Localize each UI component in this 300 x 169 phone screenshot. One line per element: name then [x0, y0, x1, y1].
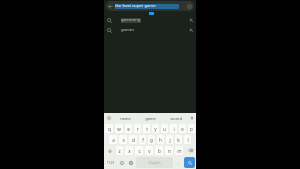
button[interactable]: d	[129, 135, 137, 144]
button[interactable]: t	[143, 124, 150, 133]
button[interactable]: x	[125, 146, 133, 155]
staticText: l	[187, 137, 189, 143]
staticText: z	[118, 148, 121, 154]
button[interactable]: q	[105, 124, 113, 133]
button[interactable]: ?123	[105, 157, 116, 168]
staticText: v	[148, 148, 151, 154]
button[interactable]: i	[170, 124, 177, 133]
button[interactable]: Back	[106, 1, 194, 11]
button[interactable]: u	[161, 124, 168, 133]
button[interactable]: v	[145, 146, 153, 155]
button[interactable]: Back	[106, 1, 115, 11]
staticText: English	[149, 160, 161, 165]
button[interactable]: game	[138, 113, 163, 123]
button[interactable]: b	[155, 146, 163, 155]
button[interactable]: c	[135, 146, 143, 155]
staticText: u	[163, 126, 166, 132]
button[interactable]: a	[109, 135, 117, 144]
button[interactable]: w	[115, 124, 123, 133]
button[interactable]: n	[165, 146, 173, 155]
button[interactable]: m	[175, 146, 183, 155]
staticText: c	[138, 148, 141, 154]
button[interactable]: Insert suggestion	[186, 18, 196, 23]
staticText: w	[117, 126, 121, 132]
staticText: d	[132, 137, 135, 143]
button[interactable]: Expand toolbar	[105, 113, 112, 123]
button[interactable]: f	[139, 135, 146, 144]
staticText: .	[178, 160, 180, 166]
button[interactable]: s	[119, 135, 127, 144]
button[interactable]: .	[174, 156, 183, 169]
staticText: n	[168, 148, 171, 154]
button[interactable]: name	[112, 113, 138, 123]
staticText: y	[154, 126, 157, 132]
staticText: i	[173, 126, 175, 132]
staticText: f	[142, 137, 144, 143]
staticText: a	[112, 137, 115, 143]
button[interactable]: g	[148, 135, 155, 144]
staticText: o	[181, 126, 184, 132]
staticText: g	[150, 137, 153, 143]
staticText: the best super game	[115, 3, 156, 9]
staticText: name	[120, 116, 131, 121]
staticText: s	[122, 137, 125, 143]
button[interactable]: Search	[184, 157, 195, 168]
button[interactable]: o	[179, 124, 186, 133]
button[interactable]: j	[166, 135, 173, 144]
button[interactable]: r	[134, 124, 141, 133]
button[interactable]: gamezing	[104, 15, 196, 25]
button[interactable]: Shift	[105, 146, 114, 155]
staticText: p	[190, 126, 193, 132]
button[interactable]: y	[152, 124, 159, 133]
button[interactable]: sound	[163, 113, 188, 123]
staticText: q	[108, 126, 111, 132]
staticText: m	[177, 148, 182, 154]
staticText: e	[127, 126, 130, 132]
button[interactable]: e	[125, 124, 132, 133]
button[interactable]: k	[175, 135, 182, 144]
button[interactable]: Insert suggestion	[186, 28, 196, 33]
staticText: b	[158, 148, 161, 154]
button[interactable]: p	[188, 124, 195, 133]
button[interactable]: Emoji	[117, 156, 126, 169]
button[interactable]: l	[184, 135, 191, 144]
staticText: k	[177, 137, 180, 143]
staticText: sound	[170, 116, 182, 121]
staticText: gamezing	[121, 17, 141, 23]
staticText: game	[145, 116, 156, 121]
staticText: r	[137, 126, 139, 132]
staticText: ?123	[107, 160, 115, 165]
staticText: t	[146, 126, 148, 132]
button[interactable]: Backspace	[185, 146, 195, 155]
button[interactable]: Voice input	[188, 113, 195, 123]
button[interactable]: h	[157, 135, 164, 144]
staticText: games	[121, 27, 135, 33]
staticText: h	[159, 137, 162, 143]
staticText: j	[169, 137, 171, 143]
staticText: x	[128, 148, 131, 154]
button[interactable]: Change language	[126, 156, 135, 169]
button[interactable]: z	[116, 146, 123, 155]
button[interactable]: Space	[136, 157, 173, 168]
button[interactable]: games	[104, 25, 196, 35]
button[interactable]: Clear	[185, 1, 194, 11]
